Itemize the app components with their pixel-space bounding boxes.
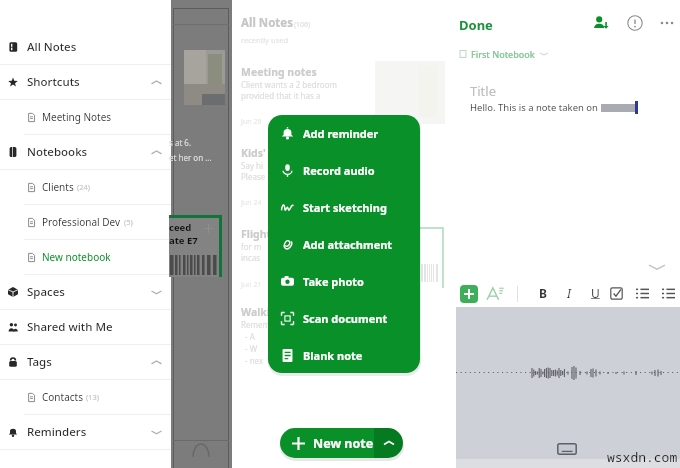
staticText: recently used — [241, 35, 289, 45]
staticText: Jun 21 — [241, 280, 262, 290]
staticText: Flight — [241, 227, 272, 241]
staticText: Clients — [42, 180, 74, 194]
staticText: I — [567, 285, 571, 301]
staticText: Blank note — [303, 348, 363, 363]
staticText: incas — [241, 252, 261, 263]
button[interactable]: Add collaborator — [592, 14, 610, 32]
button[interactable]: Checklist — [610, 287, 623, 300]
staticText: Remem — [241, 319, 270, 330]
button[interactable]: List — [636, 287, 649, 300]
staticText: Record audio — [303, 163, 375, 178]
button[interactable]: Shortcuts — [0, 65, 172, 99]
button[interactable]: U — [586, 284, 604, 302]
button[interactable]: Keyboard — [557, 443, 577, 455]
staticText: s at 6. — [169, 137, 192, 148]
button[interactable]: More note types — [374, 428, 403, 458]
button[interactable]: Shared with Me — [0, 310, 172, 344]
staticText: New notebook — [42, 250, 111, 264]
staticText: Tags — [27, 354, 52, 370]
staticText: - W — [245, 343, 258, 354]
button[interactable]: Note info — [626, 14, 644, 32]
staticText: Add reminder — [303, 126, 379, 141]
button[interactable]: Take photo — [268, 263, 420, 300]
button[interactable]: List — [662, 287, 675, 300]
button[interactable]: Insert — [460, 285, 478, 303]
staticText: Professional Dev — [42, 215, 121, 229]
button[interactable]: Reminders — [0, 415, 172, 449]
staticText: Take photo — [303, 274, 364, 289]
button[interactable]: Text style — [486, 285, 504, 303]
button[interactable]: Scan document — [268, 300, 420, 337]
staticText: Jun 26 — [241, 117, 262, 127]
staticText: - A — [245, 331, 255, 342]
staticText: (5) — [124, 217, 133, 227]
staticText: (13) — [86, 392, 100, 402]
staticText: Please — [241, 171, 266, 182]
staticText: New note — [313, 435, 374, 452]
staticText: Scan document — [303, 311, 388, 326]
button[interactable]: Done — [457, 16, 495, 34]
staticText: Reminders — [27, 424, 87, 440]
staticText: (24) — [77, 182, 91, 192]
staticText: All Notes — [241, 15, 293, 31]
staticText: wsxdn.com — [607, 448, 678, 466]
staticText: Notebooks — [27, 144, 88, 160]
staticText: - nex — [245, 355, 264, 366]
button[interactable]: All Notes — [0, 30, 172, 64]
staticText: All Notes — [27, 39, 77, 55]
button[interactable]: Tags — [0, 345, 172, 379]
button[interactable]: Collapse keyboard — [648, 258, 666, 276]
staticText: Say hi — [241, 160, 264, 171]
staticText: Jun 24 — [241, 198, 262, 208]
staticText: Add attachment — [303, 237, 393, 252]
button[interactable]: Add reminder — [268, 115, 420, 152]
staticText: et her on ... — [169, 152, 212, 163]
button[interactable]: Clients — [0, 170, 172, 204]
staticText: Hello. This is a note taken on — [470, 101, 601, 114]
staticText: Shared with Me — [27, 319, 113, 335]
button[interactable]: Start sketching — [268, 189, 420, 226]
staticText: Client wants a 2 bedroom — [241, 79, 338, 90]
button[interactable]: I — [560, 284, 578, 302]
button[interactable]: New notebook — [0, 240, 172, 274]
button[interactable]: Professional Dev — [0, 205, 172, 239]
staticText: Shortcuts — [27, 74, 80, 90]
staticText: B — [539, 285, 547, 301]
staticText: Start sketching — [303, 200, 387, 215]
button[interactable]: Meeting Notes — [0, 100, 172, 134]
button[interactable]: Contacts — [0, 380, 172, 414]
button[interactable]: B — [534, 284, 552, 302]
staticText: ate E7 — [169, 234, 198, 247]
button[interactable]: First Notebook — [457, 46, 550, 62]
staticText: Kids' — [241, 146, 266, 160]
button[interactable]: Spaces — [0, 275, 172, 309]
staticText: Walki — [241, 305, 271, 319]
staticText: Title — [470, 82, 496, 100]
button[interactable]: Record audio — [268, 152, 420, 189]
staticText: U — [591, 285, 600, 301]
button[interactable]: More options — [658, 14, 676, 32]
staticText: Contacts — [42, 390, 83, 404]
staticText: First Notebook — [471, 48, 535, 60]
button[interactable]: Blank note — [268, 337, 420, 373]
button[interactable]: Add attachment — [268, 226, 420, 263]
button[interactable]: Notebooks — [0, 135, 172, 169]
staticText: Done — [459, 16, 493, 34]
staticText: ceed — [169, 221, 192, 234]
button[interactable]: New note — [280, 428, 374, 458]
staticText: (106) — [294, 20, 311, 30]
staticText: for m — [241, 241, 262, 252]
staticText: provided that it has a — [241, 90, 321, 101]
staticText: Meeting Notes — [42, 110, 112, 124]
staticText: Meeting notes — [241, 65, 317, 79]
staticText: Spaces — [27, 284, 65, 300]
